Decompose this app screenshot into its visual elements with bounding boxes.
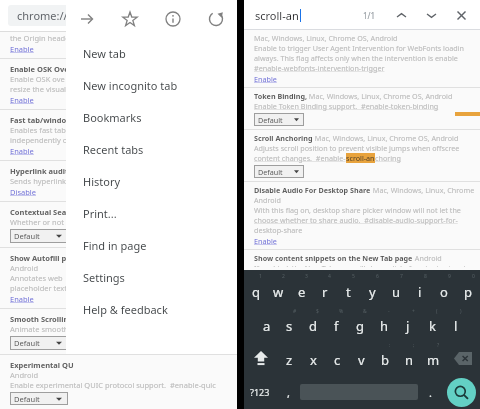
button[interactable]: Contextual Sear: [0, 202, 237, 247]
button[interactable]: Enable: [10, 294, 34, 304]
button[interactable]: Enable: [254, 236, 277, 246]
button[interactable]: History: [66, 165, 237, 197]
button[interactable]: Token Binding,: [244, 88, 480, 129]
staticText: New incognito tab: [83, 78, 178, 93]
button[interactable]: Bookmark: [108, 1, 151, 37]
button[interactable]: 2: [267, 272, 290, 307]
staticText: Enable Token Binding support. #enable-to…: [254, 101, 439, 111]
button[interactable]: 7: [384, 272, 408, 307]
button[interactable]: Recent tabs: [66, 133, 237, 165]
staticText: Enables fast tab: [10, 125, 66, 135]
button[interactable]: 8: [408, 272, 432, 307]
staticText: g: [356, 317, 364, 335]
button[interactable]: Smooth Scrollin: [0, 309, 237, 354]
button[interactable]: 6: [360, 272, 384, 307]
button[interactable]: %: [324, 307, 348, 341]
staticText: Experimental QU: [10, 360, 74, 370]
button[interactable]: Fast tab/window: [0, 110, 237, 160]
button[interactable]: #: [278, 307, 301, 341]
button[interactable]: a: [255, 307, 278, 341]
button[interactable]: the Origin heade: [0, 32, 237, 58]
staticText: 2: [282, 273, 285, 280]
staticText: With this flag on, desktop share picker …: [254, 205, 476, 215]
button[interactable]: Show content snippets on the New Tab pag…: [244, 250, 480, 270]
button[interactable]: Default: [254, 165, 304, 178]
button[interactable]: Help & feedback: [66, 293, 237, 325]
button[interactable]: Forward: [66, 1, 108, 37]
staticText: $: [316, 308, 319, 315]
staticText: Hyperlink auditi: [10, 166, 71, 176]
staticText: Default: [14, 338, 40, 348]
staticText: 0: [472, 273, 475, 280]
button[interactable]: Backspace: [445, 341, 480, 375]
button[interactable]: (: [420, 307, 444, 341]
button[interactable]: Default: [10, 229, 68, 243]
staticText: c: [334, 351, 341, 369]
staticText: Token Binding,: [254, 91, 307, 101]
staticText: Show content snippets on the New Tab pag…: [254, 253, 413, 263]
button[interactable]: Bookmarks: [66, 101, 237, 133]
button[interactable]: ?123: [244, 375, 276, 409]
button[interactable]: &: [348, 307, 372, 341]
staticText: 4: [328, 273, 331, 280]
button[interactable]: ): [444, 307, 468, 341]
staticText: 3: [305, 273, 308, 280]
button[interactable]: Close find bar: [446, 0, 476, 30]
button[interactable]: ,: [276, 375, 300, 409]
button[interactable]: $: [301, 307, 324, 341]
button[interactable]: Find in page: [66, 229, 237, 261]
button[interactable]: Settings: [66, 261, 237, 293]
button[interactable]: Enable: [10, 95, 34, 105]
button[interactable]: :: [373, 341, 397, 375]
button[interactable]: Page info: [151, 1, 194, 37]
button[interactable]: Experimental QU: [0, 355, 237, 409]
button[interactable]: 4: [313, 272, 336, 307]
button[interactable]: Mac, Windows, Linux, Chrome OS, Android: [244, 30, 480, 87]
button[interactable]: Disable: [10, 187, 36, 197]
button[interactable]: chrome://f: [8, 5, 237, 26]
staticText: Android: [10, 263, 39, 273]
button[interactable]: Enable OSK Ove: [0, 59, 237, 109]
button[interactable]: Print...: [66, 197, 237, 229]
button[interactable]: .: [418, 375, 442, 409]
button[interactable]: +: [396, 307, 420, 341]
staticText: Default: [14, 231, 40, 241]
staticText: ): [460, 308, 462, 315]
button[interactable]: Default: [254, 113, 304, 126]
button[interactable]: ?: [421, 341, 445, 375]
button[interactable]: Default: [10, 336, 68, 350]
button[interactable]: c: [325, 341, 349, 375]
button[interactable]: z: [278, 341, 301, 375]
button[interactable]: Next result: [416, 0, 446, 30]
button[interactable]: Disable Audio For Desktop Share: [244, 182, 480, 249]
button[interactable]: 9: [432, 272, 456, 307]
button[interactable]: Show Autofill pr: [0, 248, 237, 308]
staticText: Settings: [83, 270, 125, 285]
button[interactable]: 0: [456, 272, 480, 307]
button[interactable]: Search: [447, 378, 476, 407]
button[interactable]: Reload: [194, 1, 237, 37]
button[interactable]: x: [301, 341, 325, 375]
button[interactable]: ;: [397, 341, 421, 375]
button[interactable]: Scroll Anchoring: [244, 130, 480, 181]
button[interactable]: 5: [336, 272, 360, 307]
staticText: If enabled, the New Tab page will show a…: [254, 263, 470, 267]
button[interactable]: Enable: [10, 146, 34, 156]
button[interactable]: Previous result: [386, 0, 416, 30]
button[interactable]: Default: [10, 392, 68, 405]
button[interactable]: Hyperlink auditi: [0, 161, 237, 201]
staticText: Mac, Windows, Linux, Chrome OS: [371, 185, 476, 195]
button[interactable]: Enable: [254, 74, 277, 84]
button[interactable]: Shift: [244, 341, 278, 375]
button[interactable]: -: [372, 307, 396, 341]
button[interactable]: v: [349, 341, 373, 375]
button[interactable]: Enable: [10, 44, 34, 54]
staticText: r: [322, 283, 328, 301]
staticText: Find in page: [83, 238, 147, 253]
button[interactable]: 1: [244, 272, 267, 307]
button[interactable]: New tab: [66, 37, 237, 69]
button[interactable]: 3: [290, 272, 313, 307]
button[interactable]: New incognito tab: [66, 69, 237, 101]
staticText: choring: [375, 153, 401, 163]
